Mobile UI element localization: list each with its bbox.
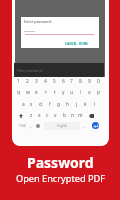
button[interactable]: ?123 <box>16 121 28 130</box>
staticText: m <box>78 112 83 119</box>
staticText: English <box>57 124 68 128</box>
staticText: 6 <box>62 78 65 85</box>
button[interactable]: Enter password: <box>24 19 52 24</box>
staticText: 9 <box>88 78 91 85</box>
button[interactable]: l <box>90 99 99 109</box>
button[interactable]: m <box>76 110 84 120</box>
staticText: 5 <box>53 78 56 85</box>
staticText: Open Encrypted PDF <box>16 172 105 185</box>
button[interactable]: 4 <box>41 76 50 86</box>
button[interactable]: 0 <box>94 76 103 86</box>
staticText: 8 <box>79 78 82 85</box>
staticText: 3 <box>35 78 38 85</box>
button[interactable]: t <box>50 87 59 97</box>
staticText: o <box>88 89 91 96</box>
button[interactable]: . <box>81 121 87 130</box>
staticText: k <box>84 101 87 108</box>
staticText: 0 <box>97 78 100 85</box>
button[interactable]: u <box>67 87 76 97</box>
button[interactable]: , <box>28 121 34 130</box>
staticText: Password <box>27 153 94 172</box>
staticText: p <box>97 89 100 96</box>
staticText: . <box>83 123 85 129</box>
staticText: s <box>30 101 33 108</box>
button[interactable]: e <box>32 87 41 97</box>
staticText: 1 <box>17 78 20 85</box>
button[interactable]: d <box>36 99 45 109</box>
staticText: l <box>94 101 96 108</box>
staticText: 4 <box>44 78 47 85</box>
button[interactable]: Emoji <box>33 121 42 130</box>
staticText: q <box>17 89 20 96</box>
staticText: a <box>22 101 25 108</box>
staticText: f <box>49 101 51 108</box>
button[interactable]: s <box>27 99 36 109</box>
staticText: w <box>26 89 30 96</box>
button[interactable]: q <box>14 87 23 97</box>
staticText: CANCEL <box>65 42 78 46</box>
staticText: Enter password: <box>24 19 52 24</box>
staticText: 7 <box>70 78 73 85</box>
staticText: ?123 <box>19 124 26 128</box>
staticText: z <box>30 112 33 119</box>
staticText: d <box>39 101 42 108</box>
staticText: t <box>54 89 56 96</box>
button[interactable]: r <box>41 87 50 97</box>
staticText: g <box>57 101 60 108</box>
button[interactable]: x <box>35 110 43 120</box>
staticText: n <box>71 112 74 119</box>
staticText: Enter password <box>17 68 42 73</box>
staticText: i <box>80 89 82 96</box>
button[interactable]: English <box>44 122 80 130</box>
button[interactable]: j <box>72 99 81 109</box>
button[interactable]: 5 <box>50 76 59 86</box>
button[interactable]: CANCEL <box>65 42 78 46</box>
button[interactable]: z <box>27 110 35 120</box>
staticText: e <box>35 89 38 96</box>
button[interactable]: c <box>43 110 51 120</box>
button[interactable]: 8 <box>76 76 85 86</box>
staticText: y <box>62 89 65 96</box>
staticText: , <box>30 123 32 129</box>
staticText: DONE <box>79 42 88 46</box>
button[interactable]: p <box>94 87 103 97</box>
button[interactable]: y <box>59 87 68 97</box>
button[interactable]: 1 <box>14 76 23 86</box>
button[interactable]: Backspace <box>87 111 96 120</box>
staticText: x <box>38 112 41 119</box>
staticText: b <box>63 112 66 119</box>
staticText: j <box>76 101 78 108</box>
button[interactable]: b <box>60 110 68 120</box>
staticText: v <box>54 112 57 119</box>
button[interactable]: DONE <box>79 42 88 46</box>
button[interactable]: a <box>19 99 28 109</box>
staticText: 2 <box>26 78 29 85</box>
button[interactable]: 2 <box>23 76 32 86</box>
staticText: u <box>70 89 73 96</box>
button[interactable]: 9 <box>85 76 94 86</box>
staticText: c <box>46 112 49 119</box>
button[interactable]: 3 <box>32 76 41 86</box>
button[interactable]: Enter <box>92 122 99 129</box>
button[interactable]: w <box>23 87 32 97</box>
staticText: r <box>45 89 47 96</box>
staticText: h <box>66 101 69 108</box>
button[interactable]: o <box>85 87 94 97</box>
button[interactable]: v <box>51 110 59 120</box>
button[interactable]: 6 <box>59 76 68 86</box>
button[interactable]: i <box>76 87 85 97</box>
button[interactable]: Shift <box>16 111 25 120</box>
button[interactable]: n <box>68 110 76 120</box>
button[interactable]: f <box>45 99 54 109</box>
button[interactable]: 7 <box>67 76 76 86</box>
button[interactable]: g <box>54 99 63 109</box>
button[interactable]: k <box>81 99 90 109</box>
button[interactable]: h <box>63 99 72 109</box>
